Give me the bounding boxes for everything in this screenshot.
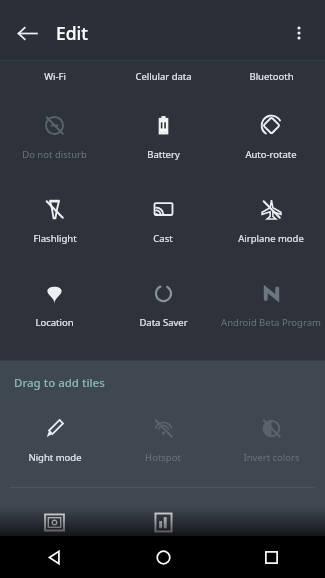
button[interactable]: Night mode [0,400,109,484]
button[interactable]: Android Beta Program [217,265,325,349]
button[interactable]: Hotspot [109,400,217,484]
button[interactable]: Bluetooth [217,70,325,97]
staticText: Bluetooth [249,70,294,83]
button[interactable]: Recents [217,536,325,578]
button[interactable]: Flashlight [0,181,109,265]
staticText: Auto-rotate [245,148,297,161]
staticText: Edit [56,21,89,45]
staticText: Drag to add tiles [14,375,105,391]
button[interactable]: Airplane mode [217,181,325,265]
button[interactable]: Location [0,265,109,349]
button[interactable]: Home [109,536,217,578]
button[interactable] [217,494,325,536]
staticText: Cellular data [135,70,192,83]
staticText: Hotspot [145,451,181,464]
staticText: Battery [147,148,180,161]
button[interactable]: Show layout bounds [0,494,109,536]
button[interactable]: Profile GPU rendering [109,494,217,536]
button[interactable]: Wi-Fi [0,70,109,97]
staticText: Data Saver [139,316,188,329]
button[interactable]: More options [277,11,321,55]
button[interactable]: Back [0,536,109,578]
staticText: Wi-Fi [44,70,66,83]
staticText: Cast [153,232,173,245]
button[interactable]: Do not disturb [0,97,109,181]
staticText: Invert colors [243,451,300,464]
button[interactable]: Auto-rotate [217,97,325,181]
button[interactable]: Cast [109,181,217,265]
button[interactable]: Data Saver [109,265,217,349]
staticText: Location [35,316,74,329]
button[interactable]: Cellular data [109,70,217,97]
staticText: Night mode [28,451,82,464]
staticText: Airplane mode [238,232,304,245]
staticText: Do not disturb [22,148,87,161]
button[interactable]: Back [5,11,49,55]
button[interactable]: Invert colors [217,400,325,484]
staticText: Android Beta Program [221,316,321,329]
button[interactable]: Battery [109,97,217,181]
staticText: Flashlight [33,232,77,245]
